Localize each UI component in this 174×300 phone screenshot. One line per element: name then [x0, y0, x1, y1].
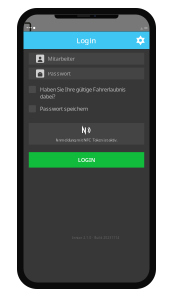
staticText: Passwort speichern — [40, 105, 88, 112]
button[interactable]: Passwort speichern — [23, 105, 149, 112]
button[interactable]: Haben Sie Ihre gültige Fahrerlaubnis dab… — [23, 86, 149, 96]
staticText: ▴ — [140, 25, 143, 31]
staticText: Mitarbeiter — [48, 55, 75, 62]
button[interactable]: Passwort — [23, 68, 149, 79]
button[interactable]: Mitarbeiter — [23, 53, 149, 65]
staticText: Version 2.1.0 · Build 20231114 — [71, 236, 119, 240]
staticText: Anmeldung mit NFC Token ist aktiv. — [55, 137, 117, 142]
staticText: Login — [76, 35, 96, 45]
staticText: Haben Sie Ihre gültige Fahrerlaubnis dab… — [40, 86, 126, 100]
button[interactable]: Anmeldung mit NFC Token ist aktiv. — [23, 123, 149, 145]
staticText: LOGIN — [78, 156, 95, 163]
button[interactable]: LOGIN — [23, 152, 149, 168]
button[interactable]: Settings — [135, 35, 149, 45]
staticText: ••• — [26, 24, 32, 31]
staticText: Passwort — [48, 70, 71, 77]
